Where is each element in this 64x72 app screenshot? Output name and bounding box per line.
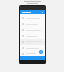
button[interactable]	[20, 15, 45, 21]
button[interactable]	[20, 45, 45, 51]
button[interactable]: More options	[20, 10, 45, 14]
button[interactable]	[20, 33, 45, 39]
button[interactable]	[20, 39, 45, 45]
button[interactable]	[20, 51, 45, 56]
button[interactable]	[20, 27, 45, 33]
button[interactable]	[20, 21, 45, 27]
button[interactable]: Add	[39, 50, 43, 54]
